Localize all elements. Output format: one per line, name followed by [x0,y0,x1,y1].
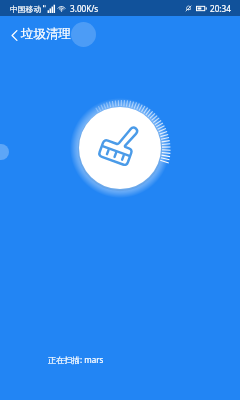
staticText: 垃圾清理 [21,26,71,42]
staticText: 20:34 [210,3,231,14]
staticText: 3.00K/s [70,3,99,14]
button[interactable]: 开始扫描 [64,92,176,204]
staticText: 正在扫描: mars [48,354,104,365]
button[interactable]: 返回 [4,25,24,45]
staticText: 中国移动 [10,4,42,14]
